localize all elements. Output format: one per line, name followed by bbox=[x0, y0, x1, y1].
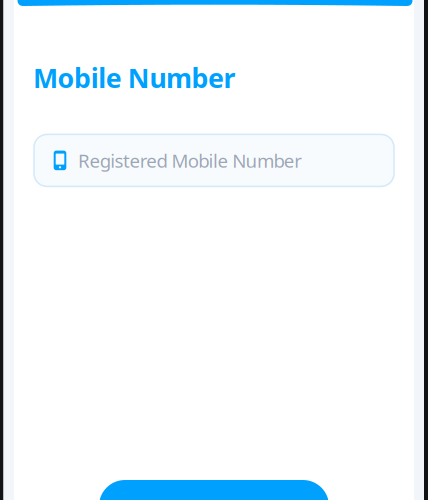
staticText: Mobile Number bbox=[33, 60, 236, 95]
button[interactable]: Continue bbox=[99, 480, 329, 500]
staticText: Registered Mobile Number bbox=[78, 148, 302, 173]
button[interactable]: Registered Mobile Number bbox=[34, 134, 394, 186]
